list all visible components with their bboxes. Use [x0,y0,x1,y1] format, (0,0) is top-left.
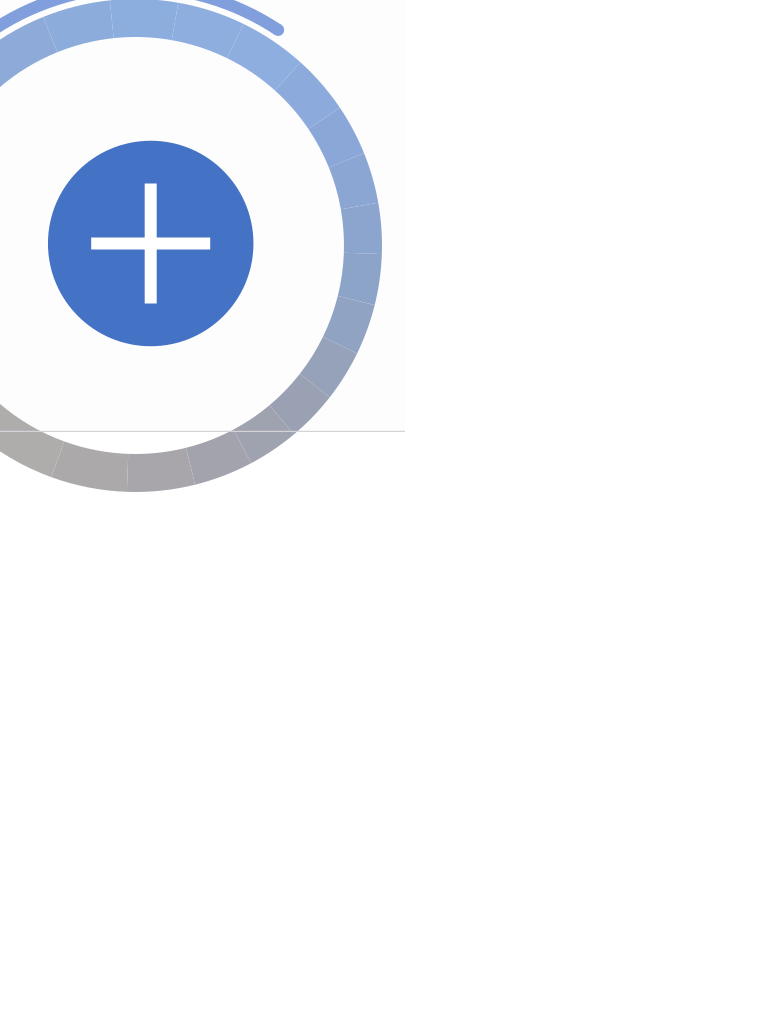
button[interactable]: Add [48,141,253,346]
